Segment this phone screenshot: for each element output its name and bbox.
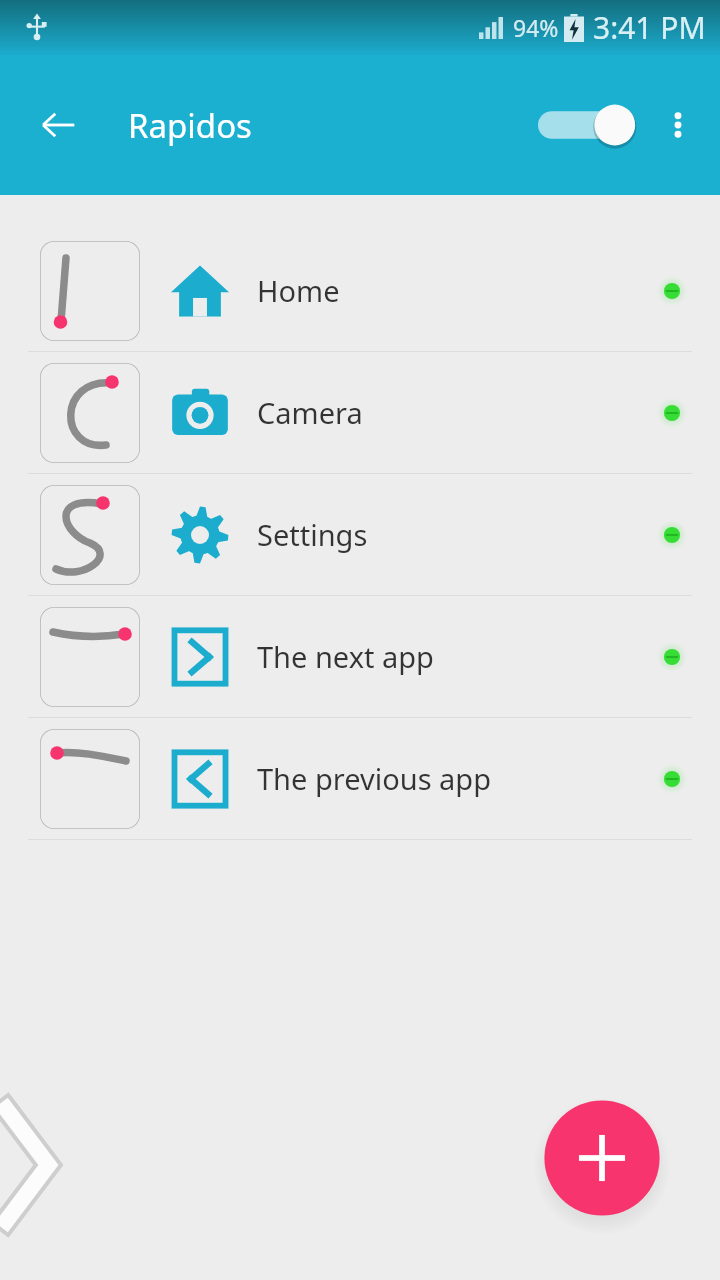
staticText: 94%	[513, 12, 559, 43]
other: Enabled	[652, 759, 692, 799]
other: Enabled	[652, 515, 692, 555]
button[interactable]: Settings	[0, 474, 720, 595]
button[interactable]: Back	[30, 97, 86, 153]
button[interactable]: Home	[0, 230, 720, 351]
staticText: Home	[257, 271, 340, 310]
button[interactable]: Open drawer	[0, 1100, 62, 1230]
staticText: The previous app	[257, 759, 492, 798]
staticText: Rapidos	[128, 103, 252, 148]
staticText: 3:41 PM	[593, 7, 706, 48]
button[interactable]: The previous app	[0, 718, 720, 839]
staticText: Settings	[257, 515, 368, 554]
staticText: The next app	[257, 637, 434, 676]
button[interactable]: The next app	[0, 596, 720, 717]
button[interactable]: Enable gestures	[538, 95, 634, 155]
button[interactable]: Camera	[0, 352, 720, 473]
button[interactable]: More options	[650, 97, 706, 153]
staticText: Camera	[257, 393, 363, 432]
other: Enabled	[652, 271, 692, 311]
other: Enabled	[652, 393, 692, 433]
other: Enabled	[652, 637, 692, 677]
button[interactable]: Add gesture	[542, 1098, 662, 1218]
